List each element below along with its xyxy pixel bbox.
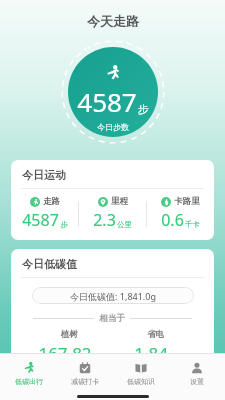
button[interactable]: 今日步数 [68,47,158,137]
staticText: 今日步数 [97,122,129,132]
staticText: 省电 [147,329,164,340]
staticText: 里程 [111,196,128,207]
staticText: 今日低碳值 [22,257,77,271]
staticText: 低碳知识 [127,377,155,386]
staticText: 设置 [190,377,204,386]
button[interactable]: 低碳出行 [0,354,57,392]
button[interactable]: 卡路里 [147,196,214,231]
staticText: 4587 [22,209,59,231]
staticText: 走路 [43,196,60,207]
staticText: 今日低碳值: 1,841.0g [70,290,156,302]
button[interactable]: 走路 [11,196,78,231]
button[interactable]: 低碳知识 [113,354,169,392]
staticText: 今日运动 [22,168,66,182]
button[interactable]: 今日低碳值 [11,249,214,376]
button[interactable]: 设置 [169,354,225,392]
staticText: 公里 [117,220,132,229]
staticText: 卡路里 [174,196,200,207]
staticText: 1.84 [134,342,168,365]
staticText: 0.6 [161,209,184,231]
staticText: 相当于 [99,313,125,324]
button[interactable]: 今日运动 [11,160,214,240]
staticText: 4587 [77,84,137,119]
staticText: 167.82 [38,342,92,365]
staticText: 今天走路 [87,13,139,29]
staticText: 千卡 [185,220,200,229]
button[interactable]: 植树 [27,329,112,365]
staticText: 2.3 [93,209,116,231]
staticText: 减碳打卡 [71,377,99,386]
staticText: 植树 [61,329,78,340]
staticText: 步 [60,220,68,229]
staticText: 低碳出行 [15,377,43,386]
staticText: 步 [138,102,149,116]
button[interactable]: 减碳打卡 [57,354,113,392]
button[interactable]: 里程 [79,196,146,231]
button[interactable]: 省电 [112,329,198,365]
